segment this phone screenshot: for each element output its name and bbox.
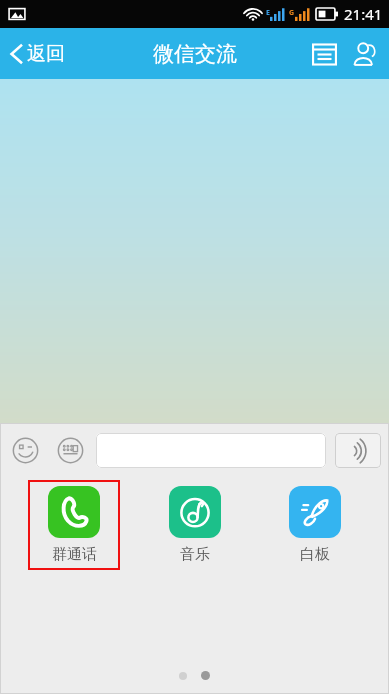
staticText: 21:41 (344, 4, 383, 24)
staticText: G (289, 8, 295, 18)
button[interactable]: 群通话 (28, 480, 120, 570)
button[interactable]: Members (345, 33, 389, 75)
button[interactable]: 白板 (269, 480, 361, 570)
button[interactable] (96, 433, 326, 468)
staticText: 微信交流 (153, 41, 237, 67)
button[interactable]: 返回 (0, 36, 77, 72)
staticText: 白板 (300, 545, 330, 564)
staticText: 音乐 (180, 545, 210, 564)
button[interactable]: Voice (335, 433, 381, 468)
staticText: 群通话 (52, 545, 97, 564)
staticText: 返回 (27, 42, 65, 66)
button[interactable]: 音乐 (149, 480, 241, 570)
button[interactable]: Emoji (8, 433, 43, 468)
button[interactable]: Chat log (304, 34, 345, 75)
button[interactable]: Keyboard (53, 433, 88, 468)
staticText: E (266, 8, 270, 18)
